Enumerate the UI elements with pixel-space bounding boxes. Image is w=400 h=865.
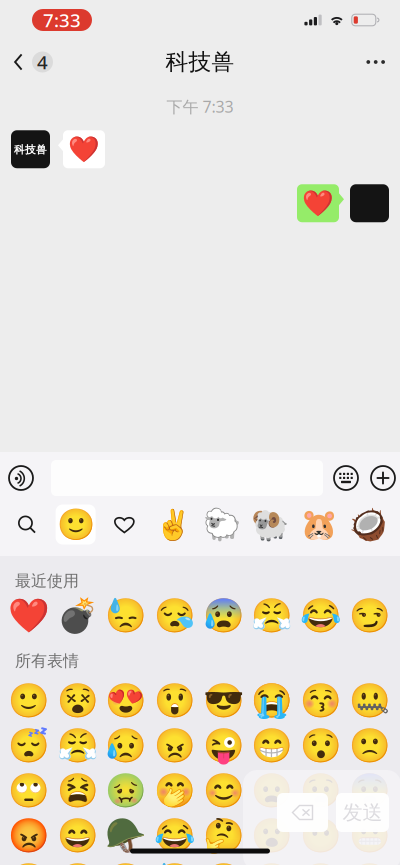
button[interactable]: 😕 [248,858,297,865]
button[interactable]: More [351,45,400,79]
staticText: 😨 [349,771,391,810]
button[interactable]: 😄 [53,813,102,858]
staticText: 😚 [300,681,342,720]
button[interactable]: 😡 [5,813,53,858]
button[interactable]: ❤️ [5,593,53,638]
staticText: 🙂 [8,681,50,720]
button[interactable]: 😮 [248,813,297,858]
button[interactable]: 😂 [297,593,345,638]
button[interactable]: Keyboard [328,460,364,496]
button[interactable]: Sticker pack 4 [295,504,343,545]
button[interactable]: 😫 [53,768,102,813]
staticText: 😯 [300,726,342,765]
staticText: 😦 [251,771,293,810]
staticText: 😓 [154,861,196,865]
staticText: 🤐 [349,681,391,720]
button[interactable]: 😦 [248,768,297,813]
staticText: 🤔 [203,816,245,855]
staticText: ✌️ [155,508,192,541]
staticText: 😤 [57,726,99,765]
button[interactable]: 😵 [53,678,102,723]
staticText: ❤️ [68,135,100,164]
staticText: 😏 [349,596,391,635]
button[interactable]: 🤔 [199,813,248,858]
button[interactable]: 😎 [199,678,248,723]
button[interactable]: 😤 [248,593,297,638]
button[interactable]: Sticker pack 2 [197,504,246,545]
button[interactable]: 😓 [151,858,199,865]
staticText: 😥 [105,726,147,765]
staticText: 😍 [105,681,147,720]
staticText: 🙄 [8,771,50,810]
staticText: 😊 [203,771,245,810]
button[interactable]: Sticker pack 5 [343,504,392,545]
button[interactable]: 😖 [297,858,345,865]
button[interactable]: 😥 [102,723,151,768]
staticText: 所有表情 [15,651,79,671]
staticText: 😐 [8,861,50,865]
button[interactable]: 😂 [151,813,199,858]
button[interactable]: 😨 [345,768,394,813]
staticText: 😶 [300,816,342,855]
button[interactable]: Send [336,793,389,832]
staticText: 😗 [349,861,391,865]
button[interactable]: 😍 [102,678,151,723]
button[interactable]: 😑 [53,858,102,865]
button[interactable]: 😗 [345,858,394,865]
button[interactable]: Search stickers [3,504,51,545]
button[interactable]: 😰 [199,593,248,638]
button[interactable]: 😒 [102,858,151,865]
button[interactable]: 😜 [199,723,248,768]
staticText: 😤 [251,596,293,635]
staticText: 🙂 [57,507,95,542]
button[interactable]: Sticker pack 3 [246,504,295,545]
staticText: 下午 7:33 [166,96,233,117]
button[interactable]: 🤐 [345,678,394,723]
staticText: 科技兽 [165,48,234,76]
button[interactable]: 😴 [5,723,53,768]
button[interactable]: 🙄 [5,768,53,813]
button[interactable]: 🤭 [151,768,199,813]
button[interactable]: 🪖 [102,813,151,858]
button[interactable]: Voice message [3,460,39,496]
button[interactable]: 😪 [151,593,199,638]
staticText: 😕 [251,861,293,865]
button[interactable]: Delete [277,793,328,832]
button[interactable]: 🤢 [102,768,151,813]
staticText: 😭 [251,681,293,720]
button[interactable]: 💣 [53,593,102,638]
button[interactable]: 😠 [151,723,199,768]
button[interactable]: Sticker pack 1 [149,504,197,545]
staticText: 😂 [154,816,196,855]
button[interactable]: 😧 [297,768,345,813]
button[interactable]: 🙁 [345,723,394,768]
button[interactable]: 😔 [199,858,248,865]
staticText: 😁 [251,726,293,765]
button[interactable]: 😐 [5,858,53,865]
button[interactable]: 😤 [53,723,102,768]
button[interactable]: 😁 [248,723,297,768]
staticText: 😲 [154,681,196,720]
button[interactable]: 😶 [297,813,345,858]
staticText: 😎 [203,681,245,720]
button[interactable]: 😊 [199,768,248,813]
button[interactable]: 😭 [248,678,297,723]
button[interactable]: 🙂 [5,678,53,723]
staticText: 🪖 [105,816,147,855]
staticText: 🤭 [154,771,196,810]
button[interactable]: Favourite stickers [100,504,149,545]
button[interactable]: 😓 [102,593,151,638]
button[interactable]: 😚 [297,678,345,723]
button[interactable]: 😬 [345,813,394,858]
staticText: 😡 [8,816,50,855]
staticText: 4 [37,50,48,74]
button[interactable]: Emoji [51,504,100,545]
button[interactable]: More functions [365,460,400,496]
staticText: 🐹 [300,507,338,542]
button[interactable]: 😯 [297,723,345,768]
staticText: 😫 [57,771,99,810]
button[interactable]: 😲 [151,678,199,723]
button[interactable]: 😏 [345,593,394,638]
staticText: 最近使用 [15,571,79,591]
button[interactable]: Back, 4 unread [0,41,53,82]
